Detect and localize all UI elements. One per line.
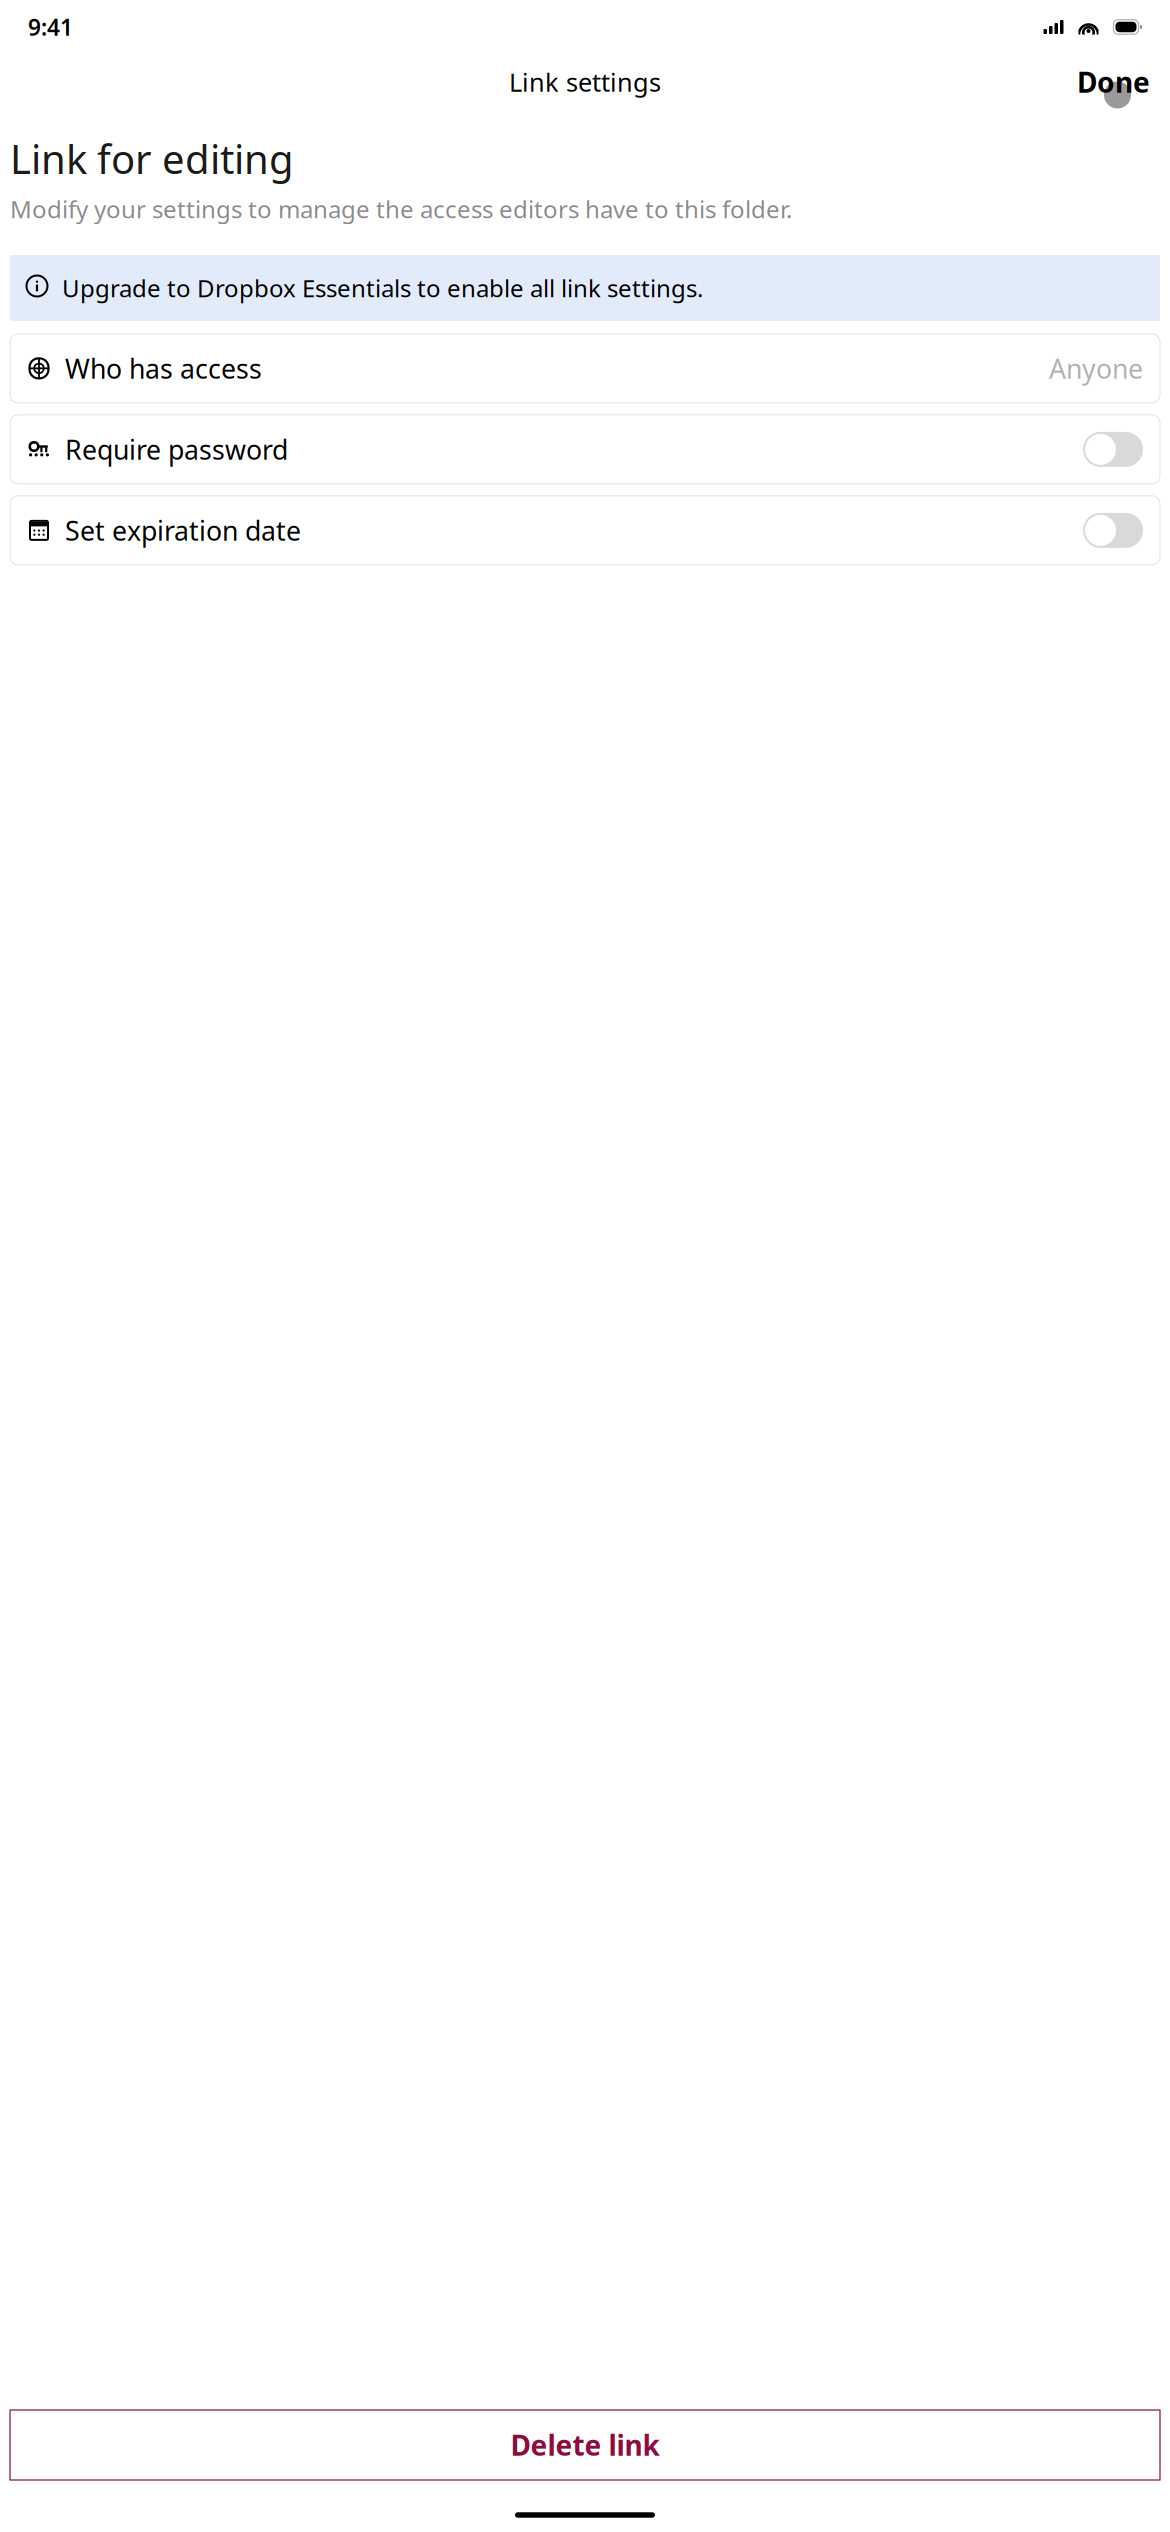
staticText: Done [1077,63,1150,101]
staticText: 9:41 [28,12,73,42]
staticText: Modify your settings to manage the acces… [10,193,792,225]
staticText: Anyone [1049,351,1143,386]
staticText: Who has access [65,351,262,386]
staticText: Delete link [510,2426,659,2464]
staticText: Set expiration date [65,513,301,548]
button[interactable]: Require password [10,415,1160,484]
staticText: Require password [65,432,288,467]
button[interactable]: Done [1067,55,1160,109]
button[interactable]: Delete link [10,2410,1160,2480]
button[interactable]: Set expiration date [10,496,1160,565]
button[interactable]: Who has access [10,334,1160,403]
staticText: Link for editing [10,132,294,185]
staticText: Link settings [509,65,661,99]
staticText: Upgrade to Dropbox Essentials to enable … [62,272,703,304]
